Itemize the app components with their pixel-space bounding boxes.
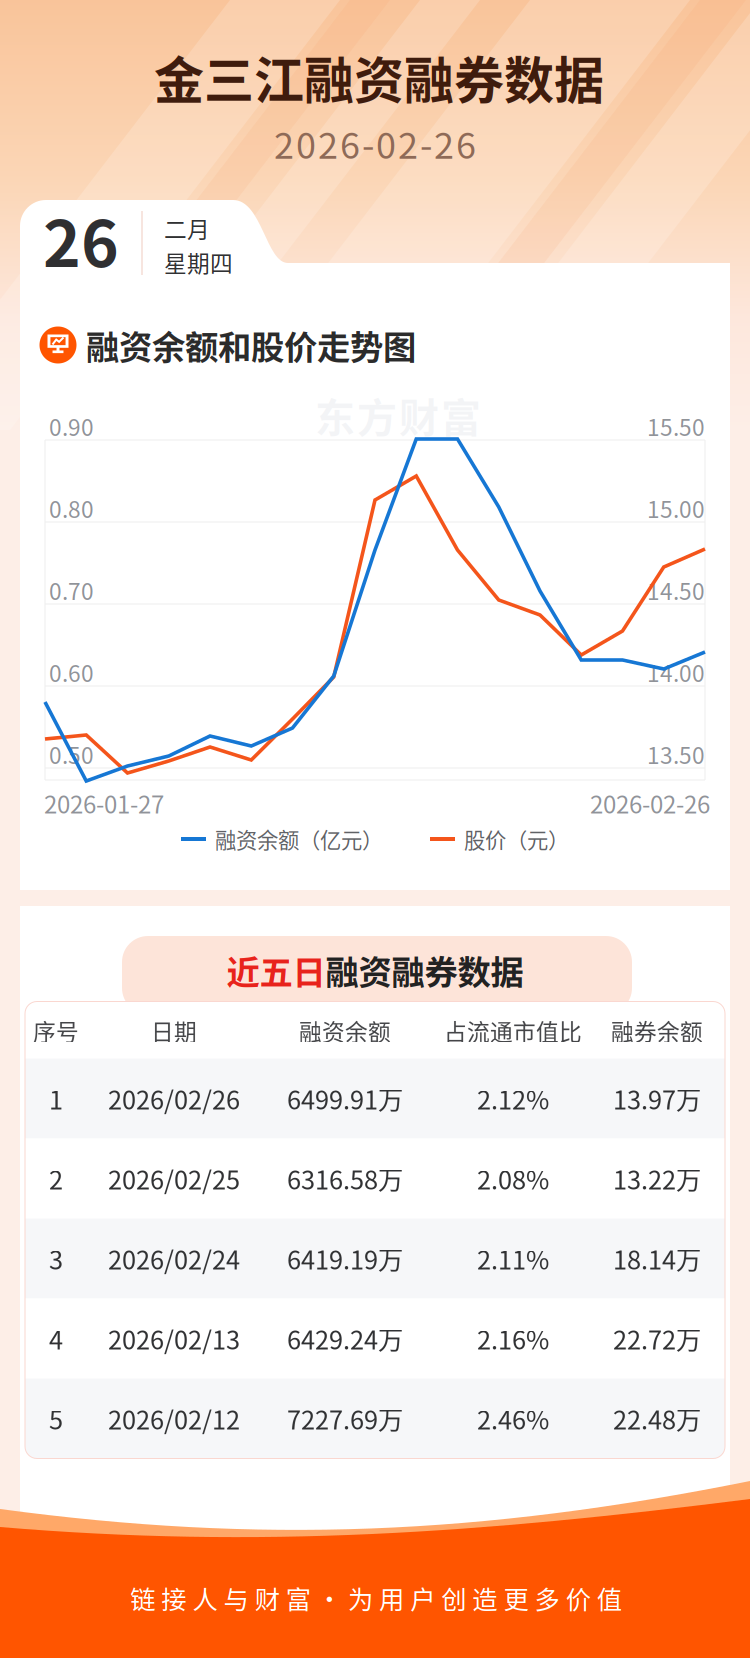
- staticText: 14.50: [647, 574, 705, 606]
- staticText: 接: [161, 1580, 186, 1616]
- staticText: 4: [49, 1320, 63, 1357]
- staticText: 多: [535, 1580, 560, 1616]
- staticText: 更: [503, 1580, 528, 1616]
- staticText: 用: [379, 1580, 404, 1616]
- staticText: 富: [286, 1580, 311, 1616]
- staticText: 2.11%: [477, 1240, 549, 1277]
- staticText: 2026-01-27: [44, 786, 164, 820]
- staticText: 链: [130, 1580, 155, 1616]
- staticText: 财: [255, 1580, 280, 1616]
- staticText: 15.00: [647, 492, 705, 524]
- staticText: 18.14万: [613, 1240, 701, 1277]
- staticText: 22.48万: [613, 1400, 701, 1437]
- staticText: 15.50: [647, 410, 705, 442]
- staticText: 与: [224, 1580, 249, 1616]
- staticText: 股价（元）: [464, 824, 569, 854]
- staticText: 5: [49, 1400, 63, 1437]
- staticText: 26: [43, 193, 119, 285]
- staticText: 融券余额: [611, 1014, 703, 1047]
- staticText: 2.16%: [477, 1320, 549, 1357]
- staticText: 占流通市值比: [444, 1014, 582, 1047]
- staticText: 2026/02/13: [108, 1320, 240, 1357]
- staticText: 近五日: [226, 946, 325, 994]
- staticText: 7227.69万: [287, 1400, 403, 1437]
- staticText: 价: [566, 1580, 591, 1616]
- staticText: 人: [192, 1580, 217, 1616]
- button[interactable]: 链: [130, 1576, 622, 1620]
- staticText: 2026-02-26: [274, 117, 476, 169]
- staticText: 13.50: [647, 738, 705, 770]
- staticText: 14.00: [647, 656, 705, 688]
- staticText: 创: [441, 1580, 466, 1616]
- staticText: 为: [348, 1580, 373, 1616]
- staticText: 金三江融资融券数据: [154, 41, 604, 113]
- staticText: 1: [49, 1080, 63, 1117]
- staticText: 日期: [151, 1014, 197, 1047]
- staticText: 13.97万: [613, 1080, 701, 1117]
- staticText: 2026/02/25: [108, 1160, 240, 1197]
- staticText: 二月: [164, 212, 210, 244]
- staticText: 2.08%: [477, 1160, 549, 1197]
- staticText: 22.72万: [613, 1320, 701, 1357]
- staticText: 6429.24万: [287, 1320, 403, 1357]
- staticText: 融资余额: [299, 1014, 391, 1047]
- staticText: 6316.58万: [287, 1160, 403, 1197]
- staticText: 3: [49, 1240, 63, 1277]
- staticText: 序号: [33, 1014, 79, 1047]
- staticText: 东方财富: [315, 386, 481, 444]
- staticText: 2026/02/12: [108, 1400, 240, 1437]
- staticText: 0.50: [49, 738, 94, 770]
- staticText: 值: [597, 1580, 622, 1616]
- staticText: 2026-02-26: [590, 786, 710, 820]
- staticText: 2026/02/24: [108, 1240, 240, 1277]
- staticText: 2: [49, 1160, 63, 1197]
- staticText: 2.12%: [477, 1080, 549, 1117]
- staticText: 0.90: [49, 410, 94, 442]
- staticText: 6419.19万: [287, 1240, 403, 1277]
- staticText: ·: [317, 1580, 342, 1616]
- staticText: 融资融券数据: [325, 946, 523, 994]
- staticText: 融资余额（亿元）: [215, 824, 383, 854]
- staticText: 0.70: [49, 574, 94, 606]
- staticText: 2.46%: [477, 1400, 549, 1437]
- staticText: 造: [472, 1580, 497, 1616]
- staticText: 2026/02/26: [108, 1080, 240, 1117]
- staticText: 星期四: [164, 246, 233, 278]
- staticText: 6499.91万: [287, 1080, 403, 1117]
- staticText: 户: [410, 1580, 435, 1616]
- staticText: 0.60: [49, 656, 94, 688]
- staticText: 13.22万: [613, 1160, 701, 1197]
- staticText: 融资余额和股价走势图: [86, 321, 416, 369]
- staticText: 0.80: [49, 492, 94, 524]
